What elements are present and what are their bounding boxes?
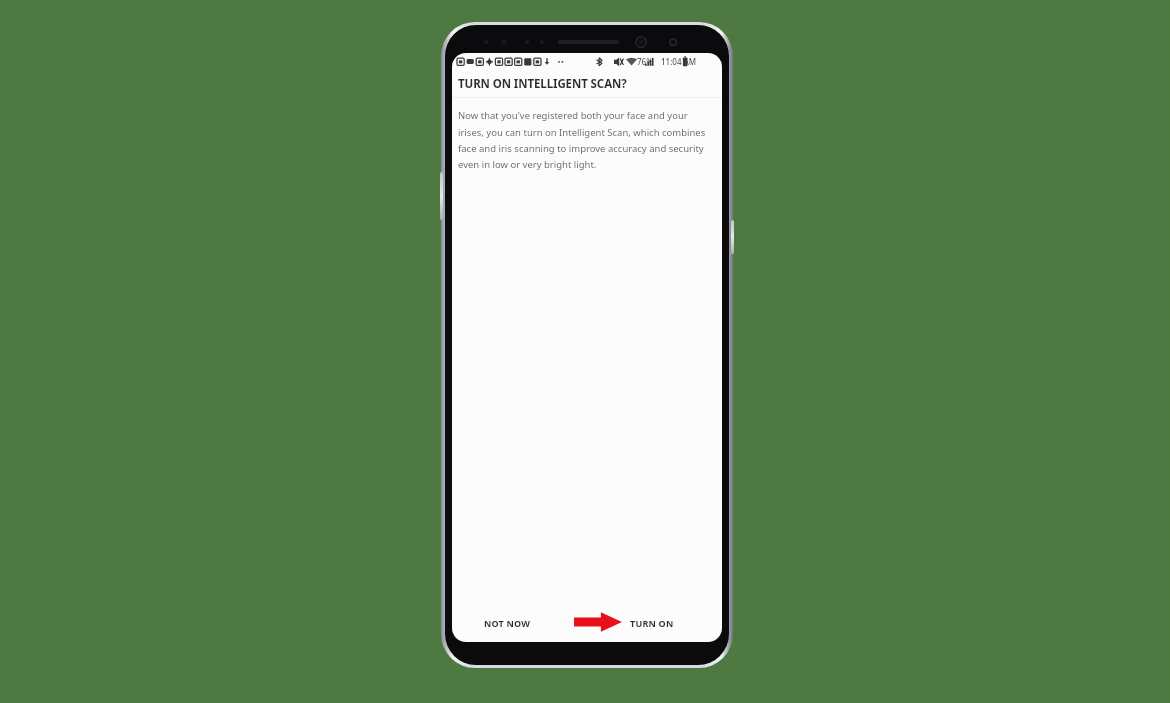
staticText: 76% <box>637 56 653 67</box>
staticText: TURN ON <box>630 617 674 629</box>
button[interactable]: TURN ON <box>620 610 684 636</box>
other: Volume buttons <box>440 172 443 220</box>
button[interactable]: NOT NOW <box>474 610 541 636</box>
staticText: TURN ON INTELLIGENT SCAN? <box>458 76 627 92</box>
other: Arrow pointing to Turn On <box>574 611 622 633</box>
staticText: NOT NOW <box>484 617 531 629</box>
staticText: 11:04 AM <box>661 56 697 67</box>
staticText: Now that you've registered both your fac… <box>458 109 710 171</box>
other: Power button <box>731 220 734 254</box>
